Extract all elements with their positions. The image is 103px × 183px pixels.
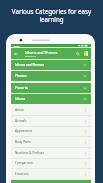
button[interactable]: Appearance: [11, 126, 91, 137]
button[interactable]: Phrases: [11, 71, 91, 81]
staticText: 10:35: [13, 44, 20, 47]
staticText: Numbers & Prefixes: [15, 151, 44, 155]
button[interactable]: Back: [11, 48, 21, 59]
staticText: Comparison: [15, 161, 33, 165]
button[interactable]: Comparison: [11, 158, 91, 169]
staticText: Idioms and Phrases: [15, 63, 45, 67]
button[interactable]: Emotions: [11, 169, 91, 180]
staticText: Idioms and Phrases: [25, 50, 58, 55]
button[interactable]: Bookmarks: [82, 48, 90, 59]
button[interactable]: Search: [74, 48, 82, 59]
staticText: Action: [15, 108, 25, 112]
staticText: Emotions: [15, 172, 29, 176]
staticText: Idioms: [15, 97, 26, 101]
staticText: Proverbs: [15, 86, 29, 90]
button[interactable]: Idioms and Phrases: [11, 60, 91, 70]
staticText: Animals: [15, 119, 27, 123]
button[interactable]: Proverbs: [11, 83, 91, 93]
button[interactable]: Animals: [11, 116, 91, 127]
button[interactable]: Body Parts: [11, 137, 91, 148]
staticText: Phrases: [15, 74, 27, 78]
staticText: categories: [25, 55, 36, 58]
staticText: Body Parts: [15, 140, 31, 144]
button[interactable]: Numbers & Prefixes: [11, 148, 91, 159]
staticText: Various Categories for easy learning: [9, 7, 94, 23]
staticText: Appearance: [15, 129, 33, 133]
button[interactable]: Idioms: [11, 94, 91, 104]
button[interactable]: Action: [11, 105, 91, 116]
